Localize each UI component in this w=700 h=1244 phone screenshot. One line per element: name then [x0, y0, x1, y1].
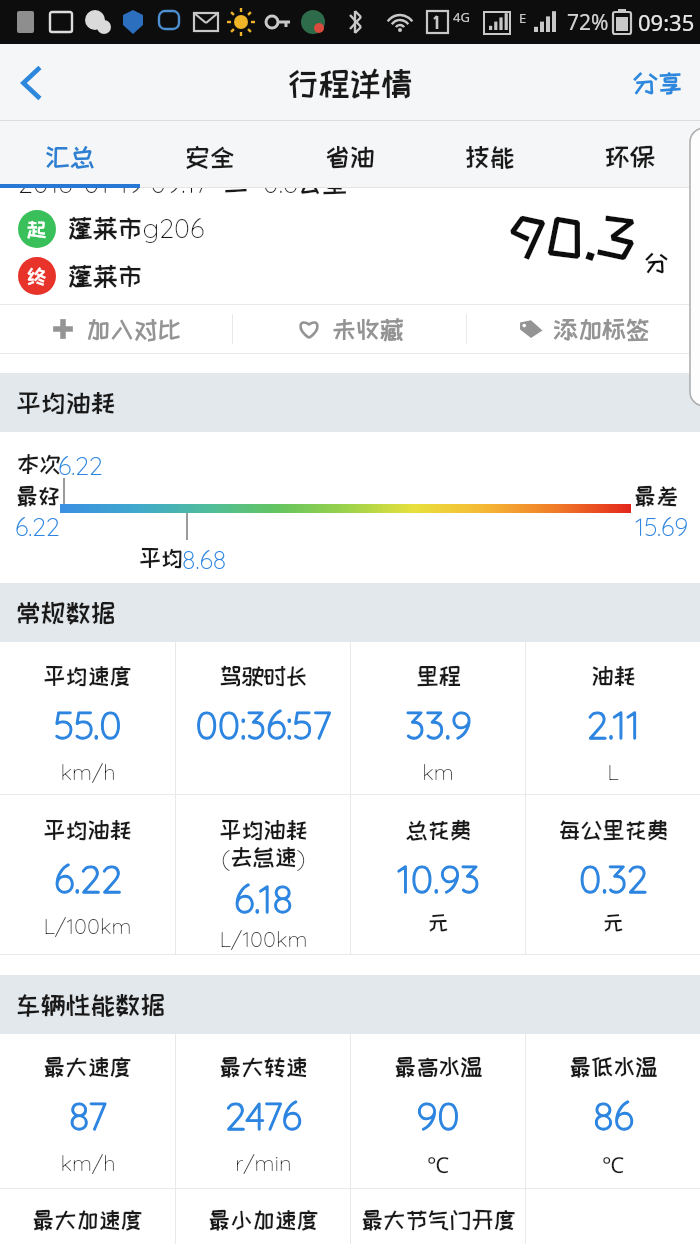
staticText: 添加标签	[554, 316, 650, 342]
staticText: 87	[69, 1092, 107, 1140]
staticText: ℃	[602, 1149, 624, 1179]
staticText: 加入对比	[86, 316, 182, 342]
staticText: 2018-01-19 09:17 三 0.6公里	[18, 188, 348, 200]
staticText: 33.9	[405, 701, 472, 749]
staticText: 平均速度	[43, 664, 132, 688]
staticText: 分	[645, 250, 669, 275]
staticText: 90	[416, 1092, 460, 1140]
staticText: 蓬莱市g206	[68, 211, 205, 245]
button[interactable]: Back	[0, 51, 64, 115]
staticText: 最小加速度	[208, 1208, 319, 1232]
staticText: 33.9	[405, 701, 472, 749]
staticText: 起	[27, 219, 47, 240]
staticText: 2476	[225, 1092, 302, 1140]
staticText: 未收藏	[332, 316, 404, 342]
staticText: 86	[593, 1092, 634, 1140]
staticText: 2.11	[587, 701, 640, 749]
staticText: 平均	[139, 546, 184, 570]
staticText: 蓬莱市	[68, 262, 143, 289]
staticText: 8.68	[182, 544, 227, 575]
staticText: 10.93	[397, 855, 480, 903]
button[interactable]: 未收藏	[233, 305, 466, 353]
staticText: 87	[69, 1092, 107, 1140]
staticText: 常规数据	[16, 599, 116, 626]
button[interactable]: 省油	[280, 121, 420, 188]
staticText: ℃	[427, 1149, 449, 1179]
staticText: 驾驶时长	[219, 664, 308, 688]
staticText: 6.18	[234, 875, 293, 923]
staticText: 2.11	[587, 701, 640, 749]
staticText: 55.0	[53, 701, 122, 749]
staticText: 10.93	[397, 855, 480, 903]
staticText: 最大转速	[219, 1055, 308, 1079]
staticText: 4G	[453, 8, 470, 26]
staticText: 平均油耗	[16, 389, 116, 416]
staticText: 2476	[225, 1092, 302, 1140]
staticText: 元	[428, 912, 449, 934]
staticText: km/h	[60, 758, 116, 786]
staticText: 总花费	[405, 818, 472, 842]
staticText: 油耗	[591, 664, 636, 688]
staticText: 0.32	[579, 855, 648, 903]
staticText: L	[607, 758, 619, 786]
staticText: 55.0	[53, 701, 122, 749]
staticText: 元	[603, 912, 624, 934]
staticText: L/100km	[43, 912, 132, 940]
staticText: 终	[27, 266, 47, 287]
staticText: 15.69	[635, 511, 689, 542]
staticText: 00:36:57	[195, 701, 332, 749]
staticText: 72%	[567, 8, 609, 37]
button[interactable]: 分享	[633, 44, 683, 121]
staticText: 90.3	[510, 207, 636, 266]
staticText: 每公里花费	[558, 818, 669, 842]
staticText: 最大节气门开度	[361, 1208, 516, 1232]
staticText: 技能	[465, 143, 515, 170]
staticText: km	[422, 758, 454, 786]
staticText: 安全	[185, 143, 235, 170]
staticText: 最高水温	[394, 1055, 483, 1079]
button[interactable]: 添加标签	[467, 305, 700, 353]
staticText: 平均油耗 (去怠速)	[219, 818, 308, 872]
staticText: 最差	[634, 484, 679, 508]
staticText: 本次	[17, 452, 62, 476]
staticText: 6.22	[54, 855, 122, 903]
button[interactable]: 加入对比	[0, 305, 232, 353]
staticText: 6.22	[15, 511, 60, 542]
button[interactable]: 安全	[140, 121, 280, 188]
staticText: E	[519, 9, 527, 27]
staticText: 00:36:57	[195, 701, 332, 749]
staticText: 6.18	[234, 875, 293, 923]
staticText: 车辆性能数据	[16, 991, 166, 1018]
staticText: 6.22	[58, 450, 103, 481]
staticText: 平均油耗	[43, 818, 132, 842]
staticText: 里程	[416, 664, 461, 688]
staticText: 最低水温	[569, 1055, 658, 1079]
button[interactable]: 环保	[560, 121, 700, 188]
staticText: 86	[593, 1092, 634, 1140]
staticText: 6.22	[54, 855, 122, 903]
staticText: 行程详情	[287, 66, 413, 100]
staticText: r/min	[235, 1149, 292, 1177]
staticText: 最大速度	[43, 1055, 132, 1079]
staticText: km/h	[60, 1149, 116, 1177]
button[interactable]: 技能	[420, 121, 560, 188]
staticText: 09:35	[638, 7, 695, 37]
staticText: 环保	[605, 143, 655, 170]
staticText: 最大加速度	[32, 1208, 143, 1232]
staticText: 0.32	[579, 855, 648, 903]
staticText: 汇总	[45, 143, 95, 170]
button[interactable]: 汇总	[0, 121, 140, 188]
staticText: 分享	[633, 69, 683, 96]
staticText: 90	[416, 1092, 460, 1140]
staticText: 最好	[16, 484, 61, 508]
staticText: 省油	[325, 143, 375, 170]
staticText: L/100km	[219, 925, 308, 953]
